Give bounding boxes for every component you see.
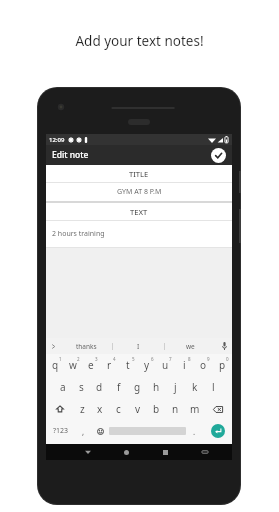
button[interactable]: q [46, 354, 64, 376]
button[interactable]: k [185, 376, 204, 398]
staticText: 2 [77, 356, 80, 362]
button[interactable]: GYM AT 8 P.M [46, 183, 232, 201]
staticText: 7 [169, 356, 172, 362]
staticText: w [69, 358, 77, 372]
staticText: m [190, 402, 200, 416]
staticText: s [79, 380, 84, 394]
button[interactable]: h [147, 376, 166, 398]
button[interactable]: e [82, 354, 100, 376]
staticText: d [96, 380, 103, 394]
staticText: a [60, 380, 66, 394]
button[interactable]: f [109, 376, 128, 398]
staticText: c [116, 402, 121, 416]
staticText: 1 [59, 356, 62, 362]
button[interactable]: TEXT [46, 203, 232, 220]
button[interactable]: c [109, 398, 128, 420]
button[interactable]: b [147, 398, 166, 420]
button[interactable]: Voice input [216, 338, 232, 354]
staticText: n [172, 402, 179, 416]
button[interactable]: Backspace [204, 398, 232, 420]
button[interactable]: TITLE [46, 165, 232, 182]
staticText: Edit note [52, 149, 89, 161]
staticText: thanks [76, 342, 97, 351]
button[interactable]: d [90, 376, 109, 398]
staticText: i [183, 358, 186, 372]
staticText: f [117, 380, 121, 394]
staticText: 0 [226, 356, 229, 362]
button[interactable]: thanks [60, 338, 112, 354]
staticText: ?123 [53, 426, 69, 436]
staticText: r [107, 358, 112, 372]
staticText: z [80, 402, 85, 416]
staticText: 3 [95, 356, 98, 362]
button[interactable]: y [137, 354, 156, 376]
staticText: b [153, 402, 160, 416]
button[interactable]: w [64, 354, 82, 376]
staticText: , [82, 426, 85, 437]
staticText: o [200, 358, 207, 372]
staticText: e [88, 358, 94, 372]
button[interactable]: z [73, 398, 91, 420]
button[interactable]: n [166, 398, 185, 420]
button[interactable]: g [128, 376, 147, 398]
staticText: Add your text notes! [75, 32, 204, 50]
staticText: k [192, 380, 198, 394]
staticText: 6 [151, 356, 154, 362]
button[interactable]: v [128, 398, 147, 420]
staticText: g [134, 380, 141, 394]
button[interactable]: Switch keyboard [185, 444, 224, 460]
button[interactable]: Back [68, 444, 107, 460]
button[interactable]: o [194, 354, 213, 376]
button[interactable]: Save note [211, 148, 226, 163]
staticText: 12:09 [49, 136, 65, 144]
button[interactable]: Enter [211, 424, 225, 438]
button[interactable]: a [54, 376, 72, 398]
button[interactable]: Recents [146, 444, 185, 460]
button[interactable]: i [175, 354, 194, 376]
button[interactable]: t [118, 354, 137, 376]
button[interactable]: p [213, 354, 232, 376]
staticText: TEXT [130, 207, 148, 217]
button[interactable]: s [72, 376, 90, 398]
staticText: we [186, 342, 195, 351]
button[interactable]: Shift [46, 398, 73, 420]
button[interactable]: , [75, 420, 92, 442]
staticText: 4 [113, 356, 116, 362]
button[interactable]: r [100, 354, 118, 376]
staticText: h [153, 380, 160, 394]
button[interactable]: 2 hours training [46, 221, 232, 247]
button[interactable]: we [165, 338, 216, 354]
staticText: t [126, 358, 130, 372]
staticText: 9 [207, 356, 210, 362]
staticText: v [135, 402, 141, 416]
staticText: GYM AT 8 P.M [117, 187, 162, 197]
button[interactable]: ?123 [46, 420, 75, 442]
button[interactable]: . [186, 420, 203, 442]
staticText: 8 [188, 356, 191, 362]
button[interactable]: Home [107, 444, 146, 460]
staticText: . [193, 426, 196, 437]
staticText: 2 hours training [52, 229, 105, 239]
staticText: y [144, 358, 150, 372]
staticText: I [137, 342, 140, 351]
staticText: l [212, 380, 215, 394]
button[interactable]: Expand suggestions [46, 338, 60, 354]
button[interactable]: l [204, 376, 223, 398]
staticText: q [52, 358, 59, 372]
staticText: u [162, 358, 169, 372]
button[interactable]: u [156, 354, 175, 376]
button[interactable]: x [91, 398, 109, 420]
staticText: p [219, 358, 226, 372]
button[interactable]: j [166, 376, 185, 398]
staticText: x [97, 402, 103, 416]
staticText: TITLE [129, 169, 149, 179]
staticText: j [174, 380, 177, 394]
button[interactable]: m [185, 398, 204, 420]
staticText: 5 [132, 356, 135, 362]
button[interactable]: Emoji [92, 420, 109, 442]
button[interactable]: I [113, 338, 164, 354]
